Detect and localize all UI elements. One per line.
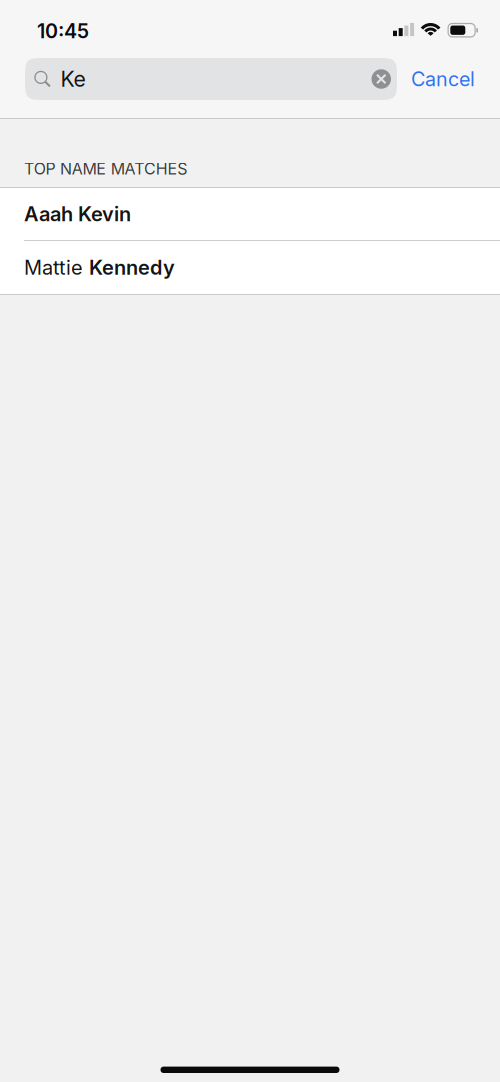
button[interactable]: Clear search text xyxy=(365,58,397,100)
staticText: Mattie Kennedy xyxy=(24,256,175,279)
staticText: Aaah Kevin xyxy=(24,202,131,226)
staticText: Ke xyxy=(60,66,85,92)
button[interactable]: Mattie Kennedy xyxy=(0,241,500,294)
staticText: 10:45 xyxy=(37,19,89,43)
button[interactable]: Aaah Kevin xyxy=(0,188,500,240)
button[interactable]: Cancel xyxy=(397,58,500,100)
staticText: Cancel xyxy=(411,67,475,91)
staticText: TOP NAME MATCHES xyxy=(24,159,187,178)
